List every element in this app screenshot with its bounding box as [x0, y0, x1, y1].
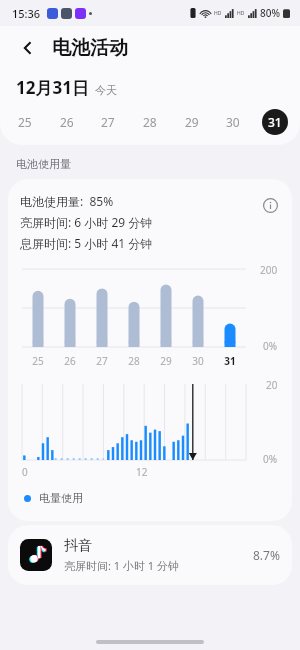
staticText: 0% — [263, 452, 278, 466]
staticText: 26 — [60, 114, 74, 130]
button[interactable]: 31 — [262, 109, 288, 135]
staticText: 27 — [96, 354, 108, 368]
staticText: 28 — [128, 354, 140, 368]
staticText: 30 — [226, 114, 240, 130]
button[interactable]: 27 — [95, 109, 121, 135]
staticText: 抖音 — [64, 537, 92, 555]
staticText: 30 — [192, 354, 204, 368]
staticText: 28 — [143, 114, 157, 130]
staticText: 25 — [32, 354, 44, 368]
staticText: HD — [214, 10, 222, 17]
staticText: 电池使用量 — [16, 157, 71, 171]
staticText: 电池活动 — [52, 36, 128, 60]
staticText: 电量使用 — [39, 491, 83, 505]
staticText: 29 — [160, 354, 172, 368]
button[interactable]: Info — [258, 193, 282, 217]
staticText: 15:36 — [12, 6, 41, 21]
staticText: 27 — [101, 114, 115, 130]
staticText: 12月31日 — [16, 76, 89, 99]
button[interactable]: 25 — [12, 109, 38, 135]
staticText: 31 — [268, 114, 282, 130]
staticText: 25 — [18, 114, 32, 130]
staticText: 电池使用量: 85% — [20, 193, 114, 209]
staticText: 今天 — [95, 83, 117, 97]
button[interactable]: Back — [14, 34, 42, 62]
button[interactable]: 28 — [137, 109, 163, 135]
staticText: 200 — [260, 263, 278, 277]
staticText: HD — [237, 10, 245, 17]
staticText: 12 — [136, 465, 148, 479]
button[interactable]: 30 — [220, 109, 246, 135]
staticText: 8.7% — [253, 547, 280, 563]
staticText: 20 — [266, 378, 278, 392]
staticText: 80% — [260, 6, 280, 20]
staticText: 26 — [64, 354, 76, 368]
button[interactable]: 26 — [54, 109, 80, 135]
staticText: 29 — [185, 114, 199, 130]
staticText: 亮屏时间: 1 小时 1 分钟 — [64, 558, 179, 573]
staticText: 息屏时间: 5 小时 41 分钟 — [20, 235, 153, 251]
staticText: 0 — [22, 465, 28, 479]
staticText: 亮屏时间: 6 小时 29 分钟 — [20, 214, 153, 230]
staticText: 0% — [263, 339, 278, 353]
button[interactable]: 29 — [179, 109, 205, 135]
staticText: 31 — [224, 354, 236, 368]
button[interactable]: 抖音 — [8, 525, 292, 585]
